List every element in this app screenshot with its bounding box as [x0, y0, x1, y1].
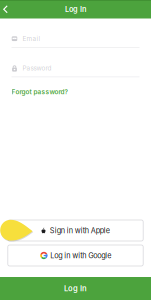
- button[interactable]: Forgot password?: [11, 77, 139, 99]
- staticText: Sign in with Apple: [50, 226, 110, 235]
- staticText: Log in with Google: [50, 251, 111, 260]
- button[interactable]: Log In: [0, 277, 151, 300]
- staticText: Log In: [65, 5, 86, 14]
- staticText: Password: [22, 64, 51, 72]
- button[interactable]: Back: [0, 0, 11, 18]
- button[interactable]: Log in with Google: [8, 245, 143, 266]
- staticText: Forgot password?: [11, 88, 67, 96]
- staticText: Email: [22, 35, 40, 42]
- button[interactable]: Sign in with Apple: [8, 220, 143, 241]
- staticText: Log In: [64, 284, 87, 293]
